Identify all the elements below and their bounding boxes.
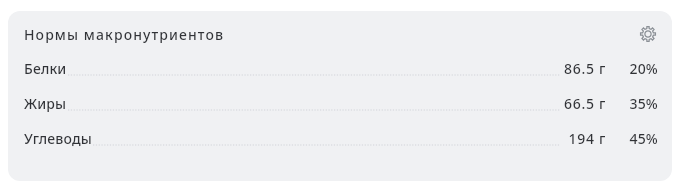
staticText: Жиры <box>24 94 67 113</box>
staticText: Белки <box>24 59 67 78</box>
staticText: 194 г <box>558 129 606 148</box>
staticText: 86.5 г <box>558 59 606 78</box>
staticText: 45% <box>624 129 658 148</box>
button[interactable]: Жиры <box>8 86 672 121</box>
staticText: Углеводы <box>24 129 92 148</box>
button[interactable]: Углеводы <box>8 121 672 156</box>
staticText: Нормы макронутриентов <box>24 25 225 44</box>
button[interactable]: Settings <box>636 22 660 46</box>
staticText: 66.5 г <box>558 94 606 113</box>
button[interactable]: Белки <box>8 51 672 86</box>
staticText: 35% <box>624 94 658 113</box>
staticText: 20% <box>624 59 658 78</box>
